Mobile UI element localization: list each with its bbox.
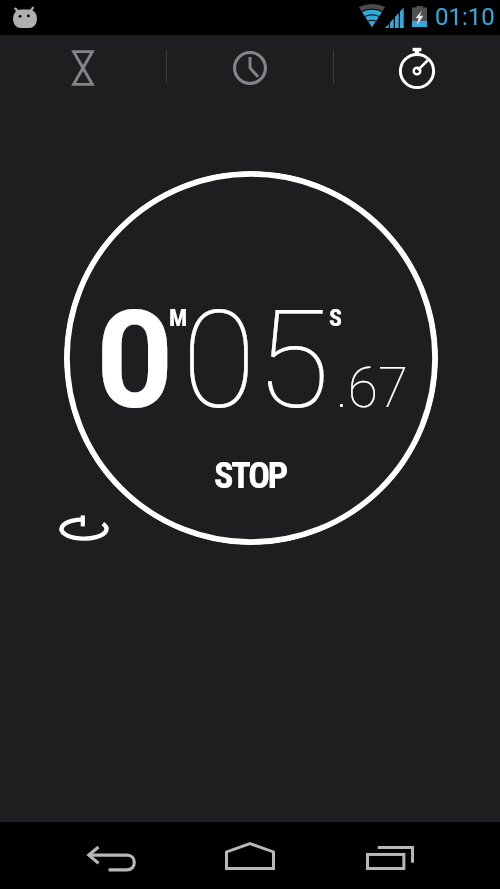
staticText: STOP: [214, 455, 287, 497]
staticText: .67: [336, 356, 408, 420]
button[interactable]: Back: [63, 825, 159, 889]
button[interactable]: Timer: [0, 34, 166, 102]
staticText: S: [329, 304, 342, 332]
staticText: 0: [96, 282, 174, 440]
button[interactable]: Stopwatch: [334, 34, 500, 102]
staticText: M: [169, 304, 188, 332]
staticText: 01:10: [435, 3, 495, 31]
staticText: 05: [182, 282, 330, 440]
button[interactable]: Home: [202, 822, 298, 889]
button[interactable]: STOP: [0, 447, 500, 505]
button[interactable]: Lap: [56, 503, 112, 551]
button[interactable]: Clock: [167, 34, 333, 102]
button[interactable]: Stop stopwatch: [64, 171, 438, 545]
button[interactable]: Recent apps: [342, 824, 438, 889]
